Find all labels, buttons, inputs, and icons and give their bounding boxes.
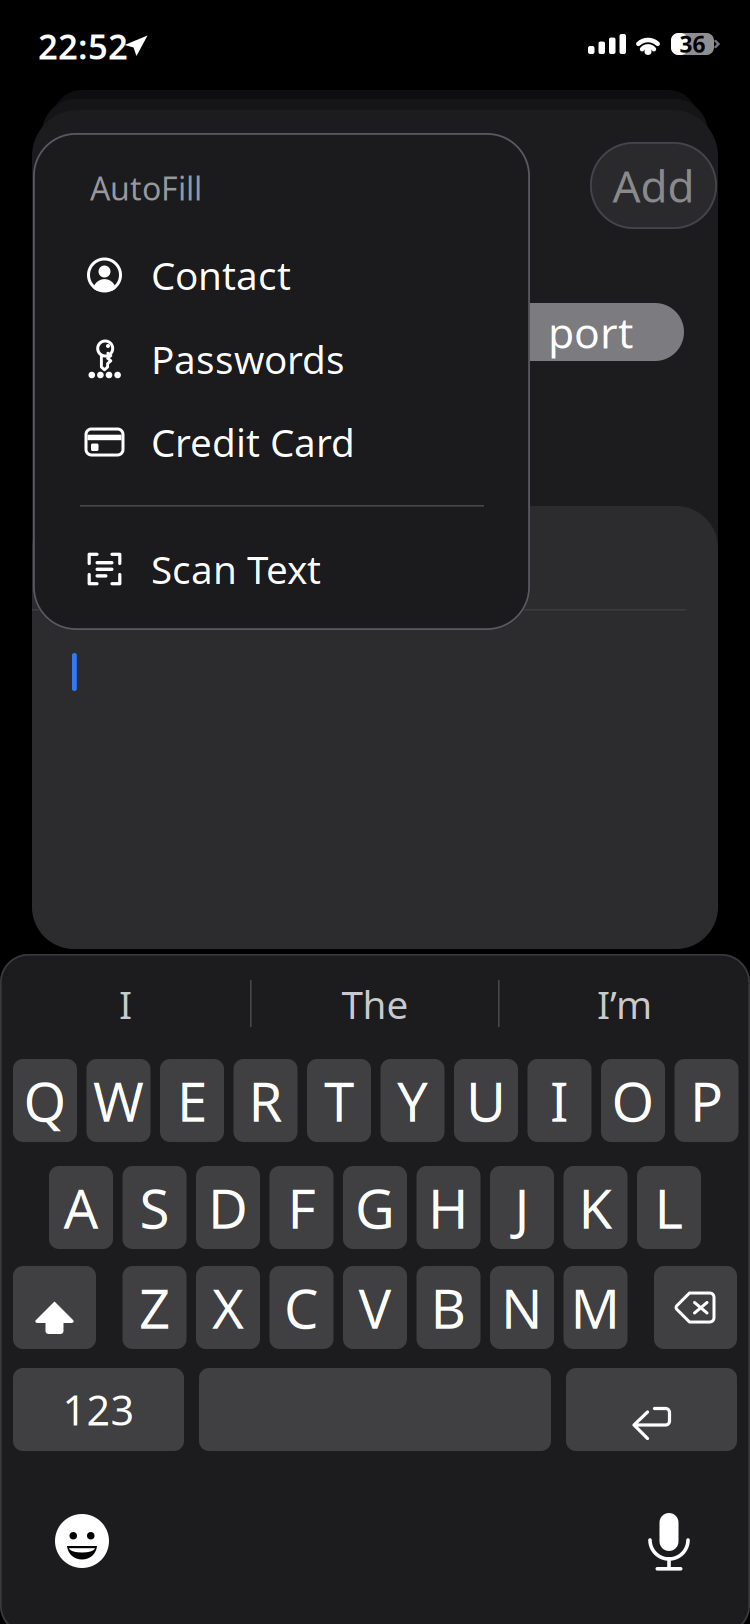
button[interactable]: B [416,1266,480,1349]
staticText: R [248,1064,282,1137]
staticText: T [324,1064,354,1137]
button[interactable]: O [601,1059,665,1142]
button[interactable]: D [196,1166,260,1249]
staticText: J [514,1171,529,1244]
staticText: Add [612,156,694,215]
staticText: I [550,1064,569,1137]
button[interactable]: Emoji [40,1499,124,1583]
button[interactable]: The [251,968,499,1040]
button[interactable]: Y [380,1059,444,1142]
staticText: I’m [597,978,652,1030]
staticText: The [341,978,408,1030]
button[interactable]: F [269,1166,333,1249]
staticText: C [284,1271,319,1344]
button[interactable]: T [307,1059,371,1142]
staticText: AutoFill [90,167,202,209]
button[interactable]: J [490,1166,554,1249]
button[interactable]: I’m [499,968,750,1040]
staticText: 36 [679,29,705,59]
staticText: 22:52 [38,23,128,69]
button[interactable]: P [674,1059,738,1142]
button[interactable]: S [122,1166,186,1249]
staticText: Q [23,1064,66,1137]
button[interactable]: X [196,1266,260,1349]
button[interactable]: H [416,1166,480,1249]
staticText: Scan Text [151,543,321,595]
staticText: E [177,1064,207,1137]
button[interactable]: R [233,1059,297,1142]
staticText: B [430,1271,466,1344]
staticText: N [501,1271,543,1344]
staticText: Y [397,1064,428,1137]
staticText: K [578,1171,612,1244]
button[interactable]: Contact [33,233,530,317]
button[interactable]: G [343,1166,407,1249]
staticText: I [119,978,132,1030]
button[interactable]: I [527,1059,591,1142]
staticText: P [690,1064,723,1137]
staticText: O [611,1064,654,1137]
staticText: H [428,1171,469,1244]
button[interactable]: Q [13,1059,77,1142]
button[interactable]: C [269,1266,333,1349]
button[interactable]: Dictation [627,1500,711,1584]
staticText: V [358,1271,391,1344]
button[interactable]: E [160,1059,224,1142]
staticText: L [654,1171,683,1244]
button[interactable]: W [86,1059,150,1142]
staticText: 123 [62,1382,134,1437]
staticText: Contact [151,249,291,301]
button[interactable]: Z [122,1266,186,1349]
button[interactable]: V [343,1266,407,1349]
button[interactable]: N [490,1266,554,1349]
staticText: Credit Card [151,416,355,468]
button[interactable]: K [563,1166,627,1249]
button[interactable]: M [563,1266,627,1349]
button[interactable]: I [0,968,251,1040]
button[interactable]: Credit Card [33,400,530,484]
button[interactable]: A [49,1166,113,1249]
button[interactable]: U [454,1059,518,1142]
button[interactable]: Return [566,1368,737,1451]
button[interactable]: Add [590,142,717,229]
staticText: G [355,1171,395,1244]
button[interactable]: Delete [654,1266,737,1349]
button[interactable]: L [637,1166,701,1249]
button[interactable]: Shift [13,1266,96,1349]
staticText: S [139,1171,169,1244]
staticText: Z [139,1271,170,1344]
staticText: port [548,304,633,360]
staticText: D [208,1171,248,1244]
staticText: M [570,1271,620,1344]
staticText: W [93,1064,144,1137]
button[interactable]: 123 [13,1368,184,1451]
staticText: A [63,1171,98,1244]
button[interactable]: Scan Text [33,527,530,611]
staticText: Passwords [151,333,345,385]
button[interactable]: Passwords [33,317,530,401]
staticText: X [212,1271,244,1344]
staticText: U [466,1064,506,1137]
staticText: F [287,1171,315,1244]
